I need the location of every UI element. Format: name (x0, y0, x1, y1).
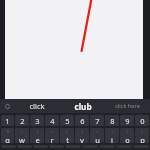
button[interactable]: click here (105, 99, 150, 113)
button[interactable]: } (135, 128, 149, 143)
staticText: ] (81, 129, 83, 134)
staticText: [ (66, 129, 68, 134)
button[interactable]: 7 (90, 115, 104, 126)
staticText: p (140, 135, 145, 143)
staticText: q (5, 135, 10, 143)
staticText: click here (115, 102, 140, 110)
button[interactable]: 2 (15, 115, 29, 126)
button[interactable]: s (17, 145, 32, 148)
staticText: 0 (140, 116, 145, 126)
staticText: 8 (110, 116, 115, 126)
button[interactable]: 1 (1, 115, 14, 126)
button[interactable]: 4 (45, 115, 59, 126)
staticText: 6 (80, 116, 85, 126)
staticText: > (111, 129, 114, 134)
button[interactable]: d (33, 145, 48, 148)
button[interactable]: { (120, 128, 134, 143)
button[interactable]: 8 (105, 115, 119, 126)
button[interactable]: [ (60, 128, 74, 143)
staticText: i (111, 135, 113, 143)
staticText: o (125, 135, 130, 143)
staticText: 9 (125, 116, 130, 126)
staticText: 1 (5, 116, 10, 126)
staticText: } (141, 129, 143, 134)
staticText: r (50, 135, 54, 143)
button[interactable] (5, 0, 143, 99)
staticText: 4 (50, 116, 55, 126)
button[interactable]: > (105, 128, 119, 143)
button[interactable]: % (1, 128, 14, 143)
button[interactable]: = (45, 128, 59, 143)
staticText: { (126, 129, 128, 134)
button[interactable]: < (90, 128, 104, 143)
staticText: t (66, 135, 69, 143)
button[interactable]: 6 (75, 115, 89, 126)
button[interactable]: click (14, 99, 60, 113)
staticText: w (19, 135, 25, 143)
button[interactable]: Expand suggestions (0, 99, 14, 113)
staticText: 3 (35, 116, 40, 126)
staticText: y (80, 135, 84, 143)
button[interactable]: club (60, 99, 105, 113)
button[interactable]: 9 (120, 115, 134, 126)
button[interactable]: f (49, 145, 64, 148)
staticText: < (96, 129, 99, 134)
staticText: 7 (95, 116, 100, 126)
staticText: | (36, 129, 39, 134)
staticText: 2 (20, 116, 25, 126)
staticText: = (51, 129, 54, 134)
button[interactable]: | (30, 128, 44, 143)
button[interactable]: 0 (135, 115, 149, 126)
staticText: 5 (65, 116, 70, 126)
staticText: club (74, 101, 92, 112)
button[interactable]: \ (15, 128, 29, 143)
button[interactable]: 3 (30, 115, 44, 126)
staticText: e (35, 135, 40, 143)
staticText: \ (21, 129, 23, 134)
button[interactable]: a (1, 145, 16, 148)
staticText: % (6, 129, 10, 134)
staticText: u (95, 135, 100, 143)
staticText: click (29, 101, 45, 111)
button[interactable]: ] (75, 128, 89, 143)
button[interactable]: 5 (60, 115, 74, 126)
